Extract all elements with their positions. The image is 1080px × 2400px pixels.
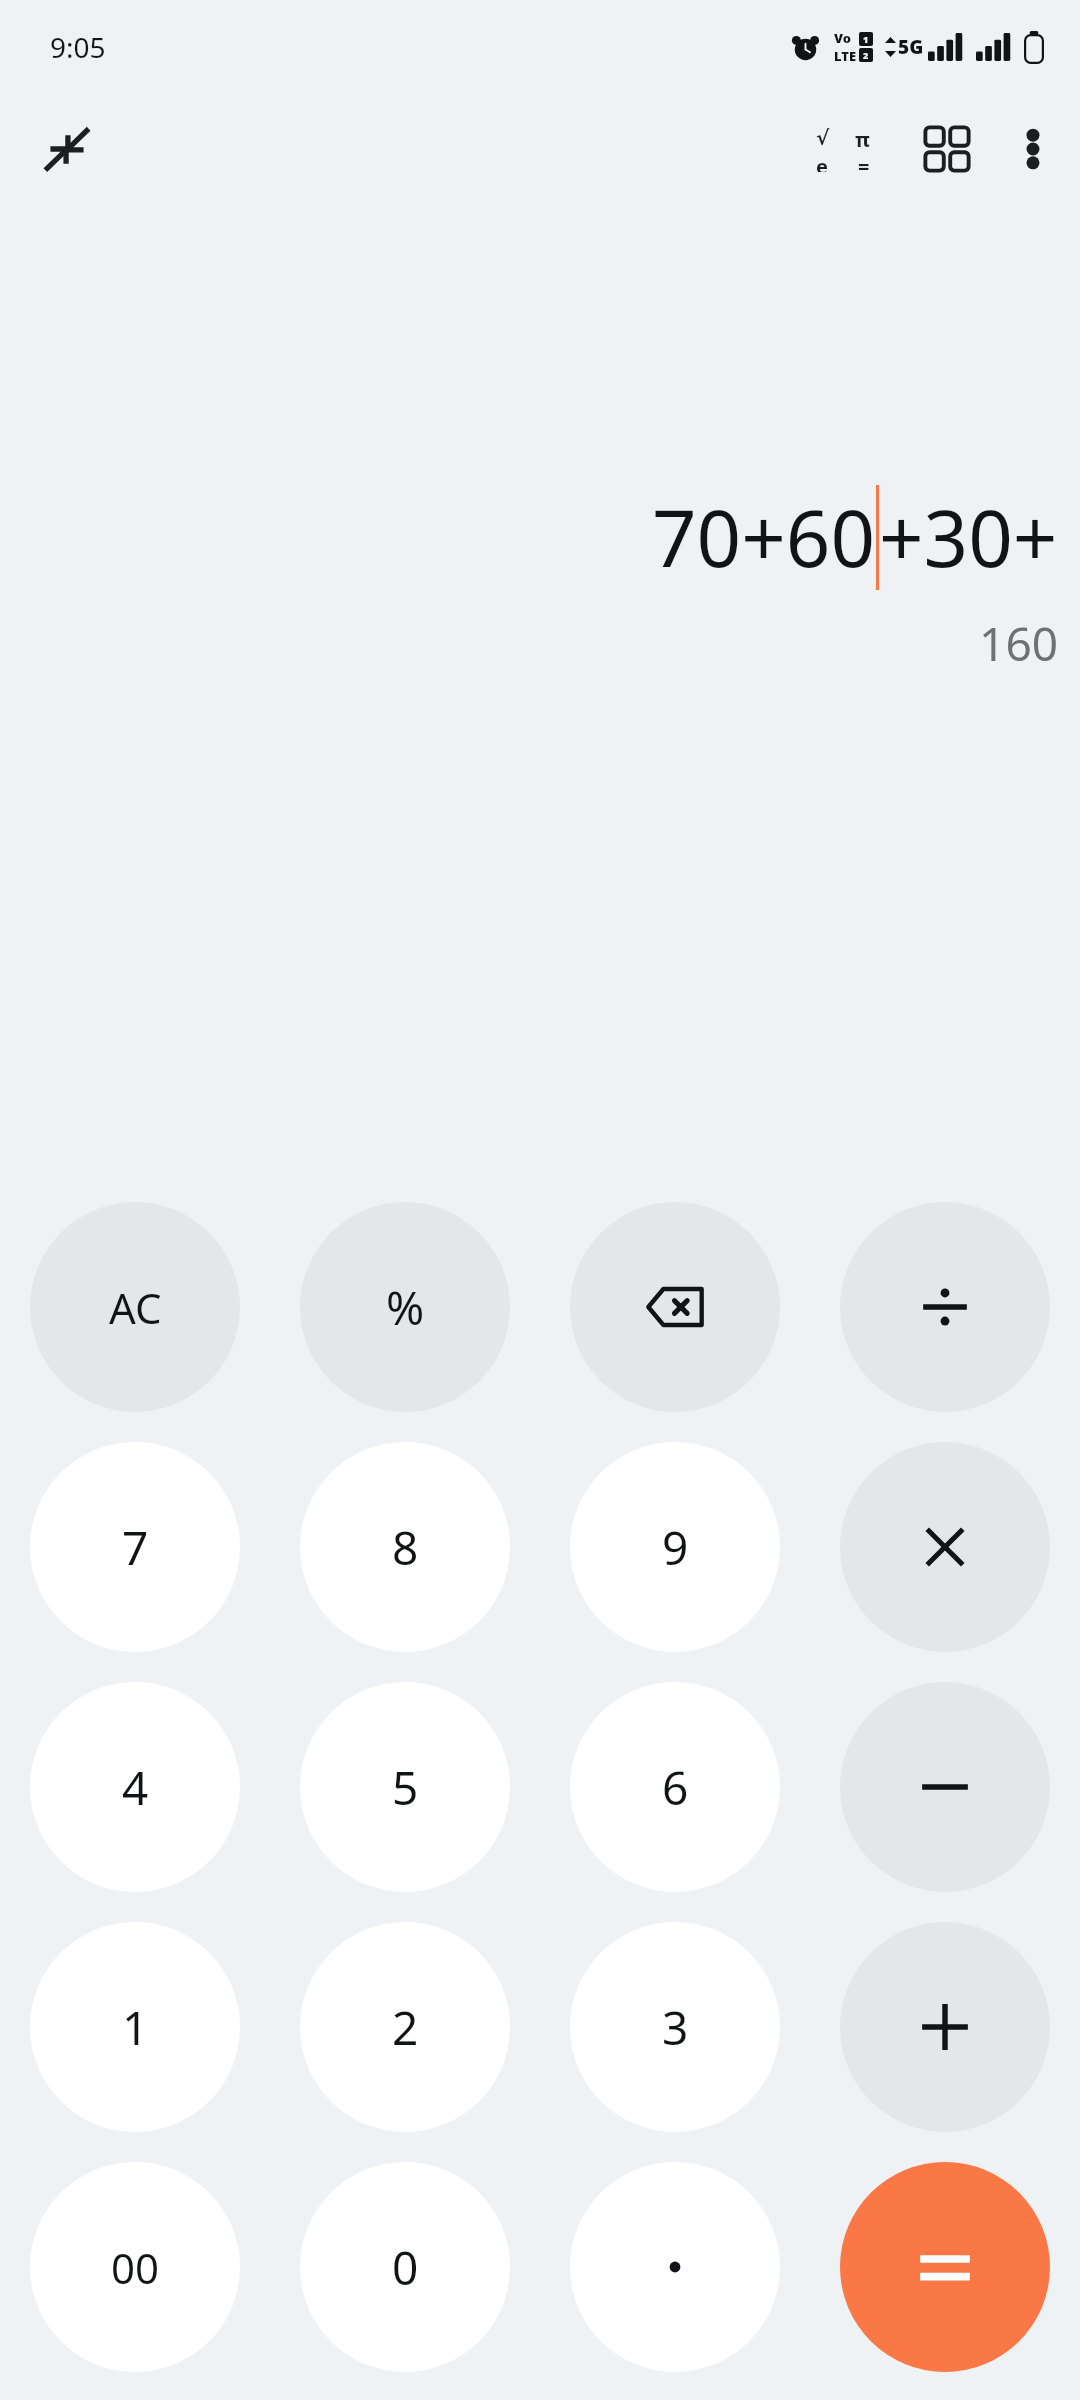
button[interactable]: Equals xyxy=(840,2162,1050,2372)
button[interactable]: 0 xyxy=(300,2162,510,2372)
staticText: e xyxy=(816,153,828,172)
button[interactable]: Backspace xyxy=(570,1202,780,1412)
button[interactable]: 7 xyxy=(30,1442,240,1652)
button[interactable]: 2 xyxy=(300,1922,510,2132)
button[interactable]: 5 xyxy=(300,1682,510,1892)
staticText: +30+ xyxy=(879,484,1058,590)
staticText: √ xyxy=(816,126,830,149)
staticText: 2 xyxy=(863,49,869,61)
staticText: 6 xyxy=(662,1756,689,1819)
button[interactable]: 4 xyxy=(30,1682,240,1892)
button[interactable]: Divide xyxy=(840,1202,1050,1412)
staticText: 5 xyxy=(392,1756,419,1819)
staticText: 9 xyxy=(662,1516,689,1579)
button[interactable]: 8 xyxy=(300,1442,510,1652)
button[interactable]: 6 xyxy=(570,1682,780,1892)
button[interactable]: Collapse xyxy=(30,112,104,186)
staticText: 160 xyxy=(979,612,1058,675)
button[interactable]: Multiply xyxy=(840,1442,1050,1652)
button[interactable]: 00 xyxy=(30,2162,240,2372)
staticText: 1 xyxy=(122,1996,149,2059)
staticText: AC xyxy=(109,1279,162,1336)
staticText: LTE xyxy=(834,47,857,65)
staticText: 9:05 xyxy=(50,28,106,66)
staticText: 4 xyxy=(122,1756,149,1819)
button[interactable]: History xyxy=(908,110,986,188)
button[interactable]: Minus xyxy=(840,1682,1050,1892)
staticText: 00 xyxy=(111,2239,160,2296)
button[interactable]: Decimal point xyxy=(570,2162,780,2372)
staticText: 7 xyxy=(122,1516,149,1579)
button[interactable]: 1 xyxy=(30,1922,240,2132)
staticText: 2 xyxy=(392,1996,419,2059)
staticText: 0 xyxy=(392,2236,419,2299)
staticText: 1 xyxy=(863,33,869,45)
button[interactable]: Plus xyxy=(840,1922,1050,2132)
staticText: 3 xyxy=(662,1996,689,2059)
button[interactable]: AC xyxy=(30,1202,240,1412)
staticText: % xyxy=(386,1276,425,1339)
staticText: Vo xyxy=(834,29,852,47)
staticText: 5G xyxy=(898,34,924,60)
button[interactable]: % xyxy=(300,1202,510,1412)
staticText: 70+60 xyxy=(652,484,876,590)
button[interactable]: 3 xyxy=(570,1922,780,2132)
button[interactable]: 9 xyxy=(570,1442,780,1652)
staticText: π xyxy=(855,126,870,153)
button[interactable]: Scientific calculator xyxy=(800,110,886,188)
staticText: 8 xyxy=(392,1516,419,1579)
button[interactable]: More options xyxy=(1008,110,1058,188)
staticText: = xyxy=(858,153,870,172)
